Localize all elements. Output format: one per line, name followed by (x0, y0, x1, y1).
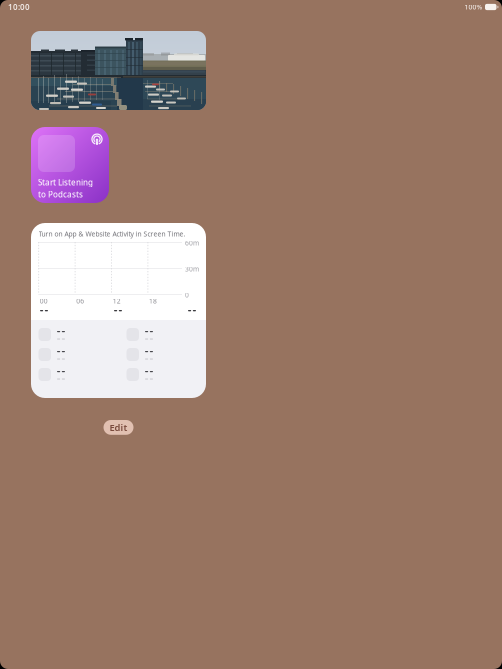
staticText: 10:00 (8, 2, 30, 12)
button[interactable]: Turn on App & Website Activity in Screen… (31, 223, 206, 398)
staticText: 00 (40, 296, 48, 305)
button[interactable]: Edit (103, 420, 133, 435)
staticText: Turn on App & Website Activity in Screen… (38, 229, 185, 238)
staticText: 0 (185, 290, 189, 299)
staticText: 18 (149, 296, 157, 305)
staticText: 30m (185, 264, 199, 273)
staticText: to Podcasts (38, 189, 83, 200)
staticText: Edit (109, 421, 127, 434)
staticText: 12 (113, 296, 121, 305)
button[interactable]: Start Listening (31, 127, 109, 203)
staticText: 100% (464, 3, 482, 11)
staticText: 60m (185, 238, 199, 247)
staticText: Start Listening (38, 177, 93, 188)
staticText: 06 (76, 296, 84, 305)
